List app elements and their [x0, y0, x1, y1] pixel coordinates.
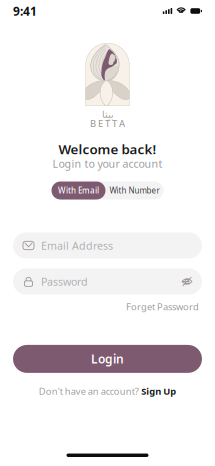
- staticText: بيتا: [101, 109, 113, 120]
- staticText: B E T T A: [90, 117, 125, 130]
- staticText: Email Address: [41, 238, 113, 253]
- staticText: Password: [41, 274, 88, 289]
- button[interactable]: Login: [13, 345, 202, 373]
- staticText: Don't have an account?: [39, 385, 139, 397]
- staticText: 9:41: [13, 3, 37, 19]
- staticText: Login to your account: [52, 156, 162, 171]
- staticText: Welcome back!: [58, 140, 156, 158]
- staticText: Sign Up: [141, 385, 176, 397]
- button[interactable]: Forget Password: [126, 300, 199, 313]
- button[interactable]: With Email: [51, 181, 105, 199]
- button[interactable]: With Number: [105, 181, 163, 199]
- staticText: Forget Password: [126, 300, 199, 313]
- staticText: With Email: [58, 185, 99, 196]
- button[interactable]: Don't have an account?: [39, 385, 176, 397]
- button[interactable]: Password: [13, 268, 202, 294]
- button[interactable]: Email Address: [13, 232, 202, 258]
- staticText: With Number: [109, 185, 159, 196]
- staticText: Login: [91, 351, 124, 367]
